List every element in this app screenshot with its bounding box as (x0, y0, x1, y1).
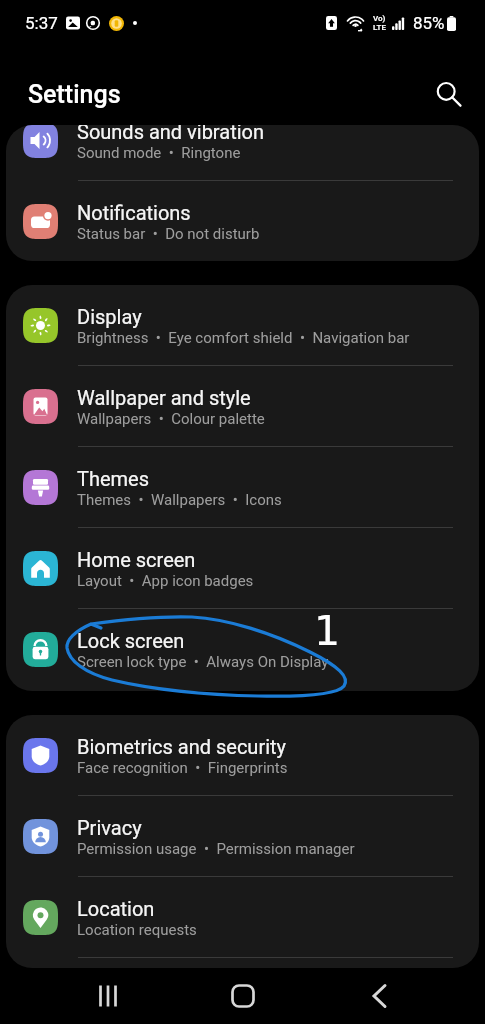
staticText: Home screen (77, 548, 196, 571)
staticText: Screen lock type • Always On Display (77, 653, 329, 671)
staticText: Lock screen (77, 629, 185, 652)
staticText: Location (77, 897, 155, 920)
button[interactable]: Recent apps (82, 970, 134, 1022)
staticText: Sound mode • Ringtone (77, 144, 241, 162)
button[interactable]: Privacy (6, 796, 479, 877)
button[interactable]: Lock screen (6, 609, 479, 690)
button[interactable]: Location (6, 877, 479, 958)
staticText: Themes • Wallpapers • Icons (77, 491, 282, 509)
staticText: Notifications (77, 201, 191, 224)
button[interactable]: Themes (6, 447, 479, 528)
button[interactable]: Home screen (6, 528, 479, 609)
staticText: LTE (373, 23, 386, 32)
staticText: 5:37 (25, 13, 58, 33)
staticText: Brightness • Eye comfort shield • Naviga… (77, 329, 410, 347)
button[interactable]: Biometrics and security (6, 715, 479, 796)
staticText: Wallpapers • Colour palette (77, 410, 265, 428)
button[interactable]: Search (429, 75, 469, 115)
staticText: Status bar • Do not disturb (77, 225, 260, 243)
staticText: Themes (77, 467, 150, 490)
staticText: Privacy (77, 816, 142, 839)
button[interactable]: Home (217, 970, 269, 1022)
staticText: Settings (28, 80, 121, 109)
staticText: Sounds and vibration (77, 125, 264, 143)
staticText: Display (77, 305, 142, 328)
staticText: Layout • App icon badges (77, 572, 254, 590)
staticText: Biometrics and security (77, 735, 287, 758)
staticText: Face recognition • Fingerprints (77, 759, 288, 777)
button[interactable]: Wallpaper and style (6, 366, 479, 447)
button[interactable]: Sounds and vibration (6, 125, 479, 181)
staticText: Vo) (373, 14, 386, 23)
staticText: 1 (314, 607, 341, 655)
staticText: 85% (413, 13, 445, 33)
staticText: Permission usage • Permission manager (77, 840, 355, 858)
staticText: Location requests (77, 921, 197, 939)
button[interactable]: Back (351, 970, 403, 1022)
button[interactable]: Display (6, 285, 479, 366)
button[interactable]: Notifications (6, 181, 479, 261)
staticText: Wallpaper and style (77, 386, 251, 409)
